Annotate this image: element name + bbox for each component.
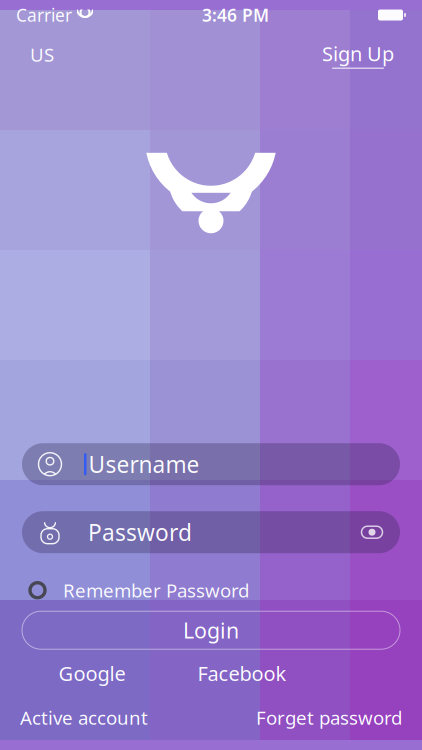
button[interactable]: Active account	[20, 701, 148, 734]
staticText: Facebook	[197, 660, 286, 686]
staticText: Forget password	[256, 705, 402, 730]
button[interactable]: US	[22, 38, 62, 71]
staticText: 3:46 PM	[202, 3, 269, 26]
staticText: Username	[88, 449, 199, 479]
button[interactable]: Login	[22, 611, 400, 649]
staticText: Carrier	[16, 3, 72, 26]
staticText: Password	[88, 517, 192, 547]
staticText: Login	[183, 616, 239, 644]
button[interactable]: Google	[22, 661, 162, 685]
button[interactable]: Facebook	[162, 661, 322, 685]
staticText: Active account	[20, 705, 148, 730]
button[interactable]: Sign Up	[316, 38, 400, 71]
staticText: Remember Password	[63, 578, 249, 603]
button[interactable]: Remember Password	[22, 577, 400, 603]
button[interactable]: Show password	[360, 522, 384, 542]
staticText: Google	[58, 660, 125, 686]
staticText: Sign Up	[322, 40, 394, 67]
staticText: US	[30, 42, 54, 67]
button[interactable]: Forget password	[256, 701, 402, 734]
